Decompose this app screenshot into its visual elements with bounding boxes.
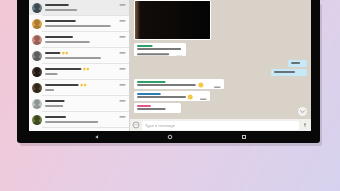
button[interactable] [288, 60, 307, 67]
button[interactable]: Back [91, 131, 103, 143]
button[interactable] [29, 112, 129, 127]
button[interactable] [134, 91, 210, 101]
button[interactable] [29, 32, 129, 47]
button[interactable] [271, 69, 307, 76]
staticText: Type a message [145, 123, 176, 128]
button[interactable] [134, 0, 211, 40]
button[interactable] [29, 96, 129, 111]
button[interactable] [134, 103, 181, 113]
button[interactable]: Recent apps [238, 131, 250, 143]
button[interactable]: Scroll to bottom [298, 107, 307, 116]
button[interactable] [29, 48, 129, 63]
button[interactable]: Type a message [142, 121, 299, 130]
button[interactable]: Emoji [132, 121, 140, 129]
button[interactable]: Home [164, 131, 176, 143]
button[interactable]: Voice message [301, 121, 309, 129]
button[interactable] [29, 0, 129, 15]
button[interactable] [134, 43, 186, 56]
button[interactable] [134, 79, 224, 89]
button[interactable] [29, 80, 129, 95]
button[interactable] [29, 16, 129, 31]
button[interactable] [29, 64, 129, 79]
